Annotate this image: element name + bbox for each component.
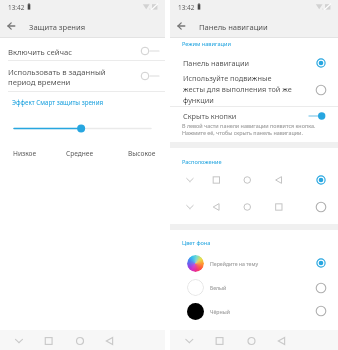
staticText: Режим навигации xyxy=(182,40,231,48)
button[interactable] xyxy=(170,53,338,72)
staticText: Перейдите на тему xyxy=(210,260,259,267)
staticText: 13:42 xyxy=(178,3,195,12)
staticText: Низкое xyxy=(13,149,37,158)
button[interactable]: Toggle xyxy=(136,43,163,59)
staticText: Цвет фона xyxy=(182,239,211,247)
button[interactable] xyxy=(170,251,338,275)
staticText: 13:42 xyxy=(8,3,25,12)
button[interactable]: Selected xyxy=(314,256,328,270)
button[interactable] xyxy=(170,299,338,323)
staticText: Расположение xyxy=(182,158,222,166)
staticText: Включить сейчас xyxy=(8,47,73,57)
button[interactable] xyxy=(0,38,165,60)
button[interactable]: Not selected xyxy=(314,200,328,214)
button[interactable]: Selected xyxy=(314,56,328,70)
staticText: Используйте подвижные жесты для выполнен… xyxy=(183,73,292,105)
button[interactable] xyxy=(0,61,165,91)
button[interactable]: Not selected xyxy=(314,304,328,318)
staticText: Среднее xyxy=(66,149,94,158)
button[interactable]: Not selected xyxy=(314,281,328,295)
staticText: Защита зрения xyxy=(29,22,86,32)
button[interactable] xyxy=(170,276,338,300)
button[interactable]: Intensity slider xyxy=(14,122,151,135)
staticText: Скрыть кнопки xyxy=(183,111,237,121)
button[interactable]: Toggle xyxy=(136,68,163,84)
button[interactable] xyxy=(170,107,338,123)
button[interactable]: Back xyxy=(3,18,19,34)
button[interactable]: Back xyxy=(173,18,189,34)
button[interactable]: Selected xyxy=(314,173,328,187)
button[interactable]: Layout option xyxy=(170,168,338,192)
staticText: Использовать в заданный период времени xyxy=(8,67,106,87)
staticText: Белый xyxy=(210,284,227,291)
staticText: Эффект Смарт защиты зрения xyxy=(12,98,104,106)
staticText: Панель навигации xyxy=(183,58,250,68)
button[interactable] xyxy=(170,72,338,106)
button[interactable]: Toggle xyxy=(303,108,328,124)
staticText: Чёрный xyxy=(210,308,230,315)
button[interactable]: Layout option xyxy=(170,195,338,219)
button[interactable]: Not selected xyxy=(314,83,328,97)
staticText: В левой части панели навигации появится … xyxy=(182,122,316,136)
staticText: Высокое xyxy=(128,149,156,158)
staticText: Панель навигации xyxy=(199,22,268,32)
